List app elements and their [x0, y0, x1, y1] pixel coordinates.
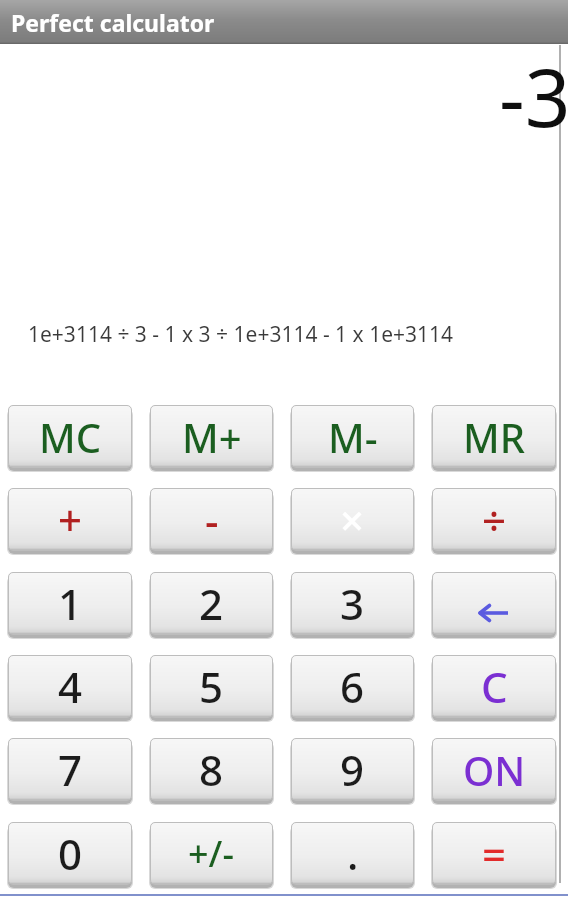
button[interactable]: M+ [150, 405, 273, 468]
button[interactable]: - [150, 488, 273, 551]
staticText: 1 [58, 575, 83, 632]
staticText: -3 [499, 41, 568, 150]
staticText: +/- [188, 829, 235, 878]
staticText: . [347, 825, 359, 882]
button[interactable]: + [8, 488, 132, 551]
button[interactable]: × [291, 488, 414, 551]
button[interactable] [432, 572, 556, 635]
button[interactable]: 3 [291, 572, 414, 635]
button[interactable]: . [291, 822, 414, 885]
button[interactable]: M- [291, 405, 414, 468]
staticText: 7 [58, 741, 83, 798]
button[interactable]: 9 [291, 738, 414, 801]
button[interactable]: 2 [150, 572, 273, 635]
button[interactable]: 8 [150, 738, 273, 801]
staticText: 6 [340, 658, 365, 715]
button[interactable]: 0 [8, 822, 132, 885]
button[interactable]: 4 [8, 655, 132, 718]
staticText: M+ [182, 410, 242, 464]
staticText: + [58, 491, 83, 548]
staticText: ÷ [482, 491, 507, 548]
staticText: 2 [199, 575, 224, 632]
button[interactable]: 5 [150, 655, 273, 718]
staticText: 0 [58, 825, 83, 882]
staticText: 4 [58, 658, 83, 715]
staticText: C [481, 658, 508, 715]
button[interactable]: MR [432, 405, 556, 468]
staticText: 3 [340, 575, 365, 632]
staticText: = [482, 825, 507, 882]
staticText: M- [328, 410, 378, 464]
button[interactable]: C [432, 655, 556, 718]
staticText: MC [39, 410, 102, 464]
button[interactable]: 1 [8, 572, 132, 635]
staticText: × [340, 491, 365, 548]
staticText: 9 [340, 741, 365, 798]
staticText: 1e+3114 ÷ 3 - 1 x 3 ÷ 1e+3114 - 1 x 1e+3… [28, 320, 454, 349]
staticText: - [205, 491, 219, 548]
button[interactable]: 7 [8, 738, 132, 801]
button[interactable]: ON [432, 738, 556, 801]
button[interactable]: ÷ [432, 488, 556, 551]
staticText: 8 [199, 741, 224, 798]
button[interactable]: +/- [150, 822, 273, 885]
button[interactable]: = [432, 822, 556, 885]
staticText: ON [463, 743, 526, 797]
button[interactable]: MC [8, 405, 132, 468]
button[interactable]: 6 [291, 655, 414, 718]
staticText: Perfect calculator [11, 7, 215, 38]
staticText: MR [463, 410, 525, 464]
staticText: 5 [199, 658, 224, 715]
